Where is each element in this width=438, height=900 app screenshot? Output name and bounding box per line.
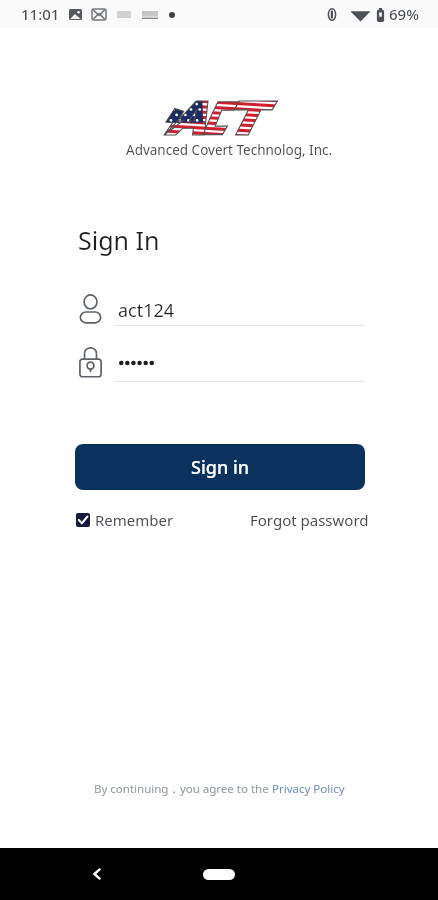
- staticText: Sign In: [78, 223, 160, 257]
- staticText: 11:01: [21, 4, 60, 24]
- staticText: By continuing，you agree to the: [94, 781, 272, 797]
- staticText: Privacy Policy: [272, 781, 345, 797]
- staticText: act124: [118, 298, 175, 323]
- staticText: 69%: [389, 4, 419, 24]
- staticText: Remember: [95, 510, 174, 530]
- button[interactable]: Back: [82, 859, 112, 889]
- staticText: Forgot password: [250, 510, 369, 530]
- button[interactable]: Password: [75, 343, 365, 383]
- button[interactable]: Home: [203, 869, 235, 880]
- button[interactable]: Privacy Policy: [272, 781, 345, 797]
- button[interactable]: Remember: [70, 504, 180, 536]
- staticText: Advanced Covert Technolog, Inc.: [126, 141, 333, 159]
- button[interactable]: Forgot password: [244, 504, 375, 536]
- button[interactable]: Username: [75, 290, 365, 330]
- button[interactable]: Sign in: [75, 444, 365, 490]
- staticText: Sign in: [191, 455, 250, 480]
